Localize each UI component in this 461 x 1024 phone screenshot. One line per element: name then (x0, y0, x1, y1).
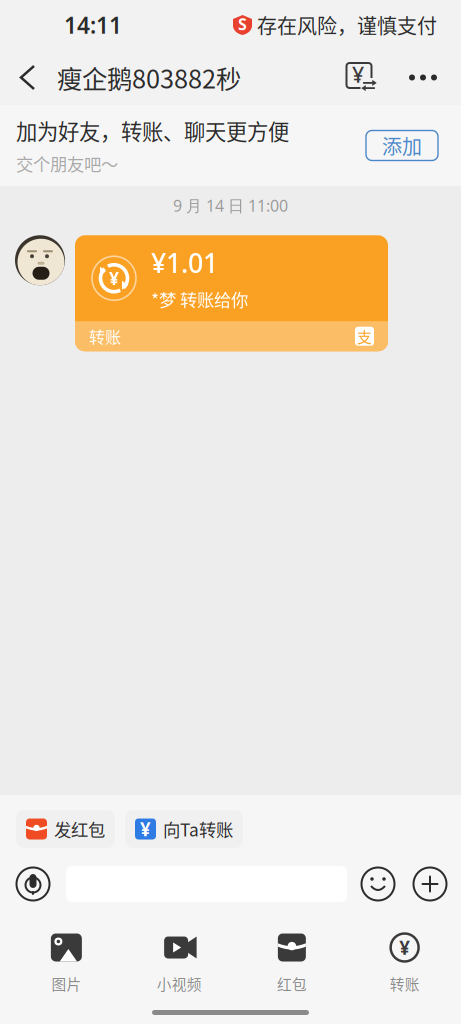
staticText: 加为好友，转账、聊天更方便 (16, 115, 289, 146)
staticText: 红包 (277, 973, 307, 994)
staticText: S (238, 13, 247, 35)
staticText: 14:11 (64, 10, 122, 40)
staticText: 存在风险，谨慎支付 (257, 10, 437, 39)
staticText: 添加 (382, 131, 422, 160)
staticText: ¥ (140, 817, 151, 841)
staticText: 发红包 (54, 816, 105, 842)
staticText: *梦 转账给你 (151, 286, 248, 311)
button[interactable]: 发红包 (16, 810, 115, 848)
button[interactable]: More options (412, 866, 448, 902)
staticText: 支 (357, 326, 372, 347)
staticText: ¥ (352, 60, 364, 89)
staticText: 向Ta转账 (163, 816, 233, 842)
button[interactable]: Emoji (360, 866, 396, 902)
button[interactable]: 图片 (10, 933, 123, 994)
staticText: 9 月 14 日 11:00 (173, 195, 288, 216)
staticText: 转账 (390, 973, 420, 994)
staticText: ¥ (399, 935, 410, 960)
button[interactable]: Back (0, 50, 57, 104)
button[interactable]: More (399, 50, 447, 104)
staticText: 转账 (89, 325, 121, 348)
staticText: ¥ (109, 267, 119, 290)
staticText: 小视频 (157, 973, 202, 994)
staticText: 图片 (51, 973, 81, 994)
staticText: 瘦企鹅803882秒 (57, 59, 241, 96)
staticText: ¥1.01 (151, 245, 218, 280)
button[interactable]: 添加 (366, 130, 438, 160)
button[interactable]: ¥ (348, 933, 461, 994)
button[interactable]: ¥ (125, 810, 243, 848)
button[interactable]: Transfer (339, 50, 383, 104)
button[interactable]: Voice (15, 866, 51, 902)
button[interactable]: 红包 (235, 933, 348, 994)
button[interactable]: 小视频 (123, 933, 236, 994)
staticText: 交个朋友吧～ (16, 151, 118, 176)
